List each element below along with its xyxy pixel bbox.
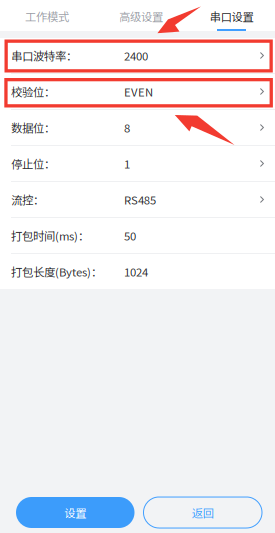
staticText: 串口波特率：	[11, 47, 77, 64]
button[interactable]: 串口波特率：	[0, 38, 275, 74]
button[interactable]: 返回	[143, 497, 262, 528]
button[interactable]: 串口设置	[188, 0, 275, 31]
staticText: 打包时间(ms)：	[11, 227, 89, 244]
staticText: 50	[124, 227, 136, 244]
staticText: 串口设置	[209, 8, 253, 24]
button[interactable]: 停止位：	[0, 146, 275, 182]
staticText: 设置	[64, 504, 86, 521]
button[interactable]: 高级设置	[94, 0, 188, 31]
staticText: 数据位：	[11, 119, 55, 136]
button[interactable]: 校验位：	[0, 74, 275, 110]
button[interactable]: 打包长度(Bytes)：	[0, 254, 275, 289]
staticText: RS485	[124, 191, 156, 208]
button[interactable]: 工作模式	[0, 0, 94, 31]
staticText: 返回	[192, 504, 214, 521]
staticText: 停止位：	[11, 155, 55, 172]
staticText: 1024	[124, 263, 148, 280]
button[interactable]: 数据位：	[0, 110, 275, 146]
staticText: EVEN	[124, 83, 153, 100]
staticText: 打包长度(Bytes)：	[11, 263, 102, 280]
staticText: 1	[124, 155, 130, 172]
button[interactable]: 流控：	[0, 182, 275, 218]
staticText: 2400	[124, 47, 148, 64]
staticText: 高级设置	[119, 8, 163, 24]
button[interactable]: 打包时间(ms)：	[0, 218, 275, 254]
staticText: 8	[124, 119, 130, 136]
staticText: 校验位：	[11, 83, 55, 100]
staticText: 流控：	[11, 191, 44, 208]
staticText: 工作模式	[25, 8, 69, 24]
button[interactable]: 设置	[16, 497, 134, 528]
